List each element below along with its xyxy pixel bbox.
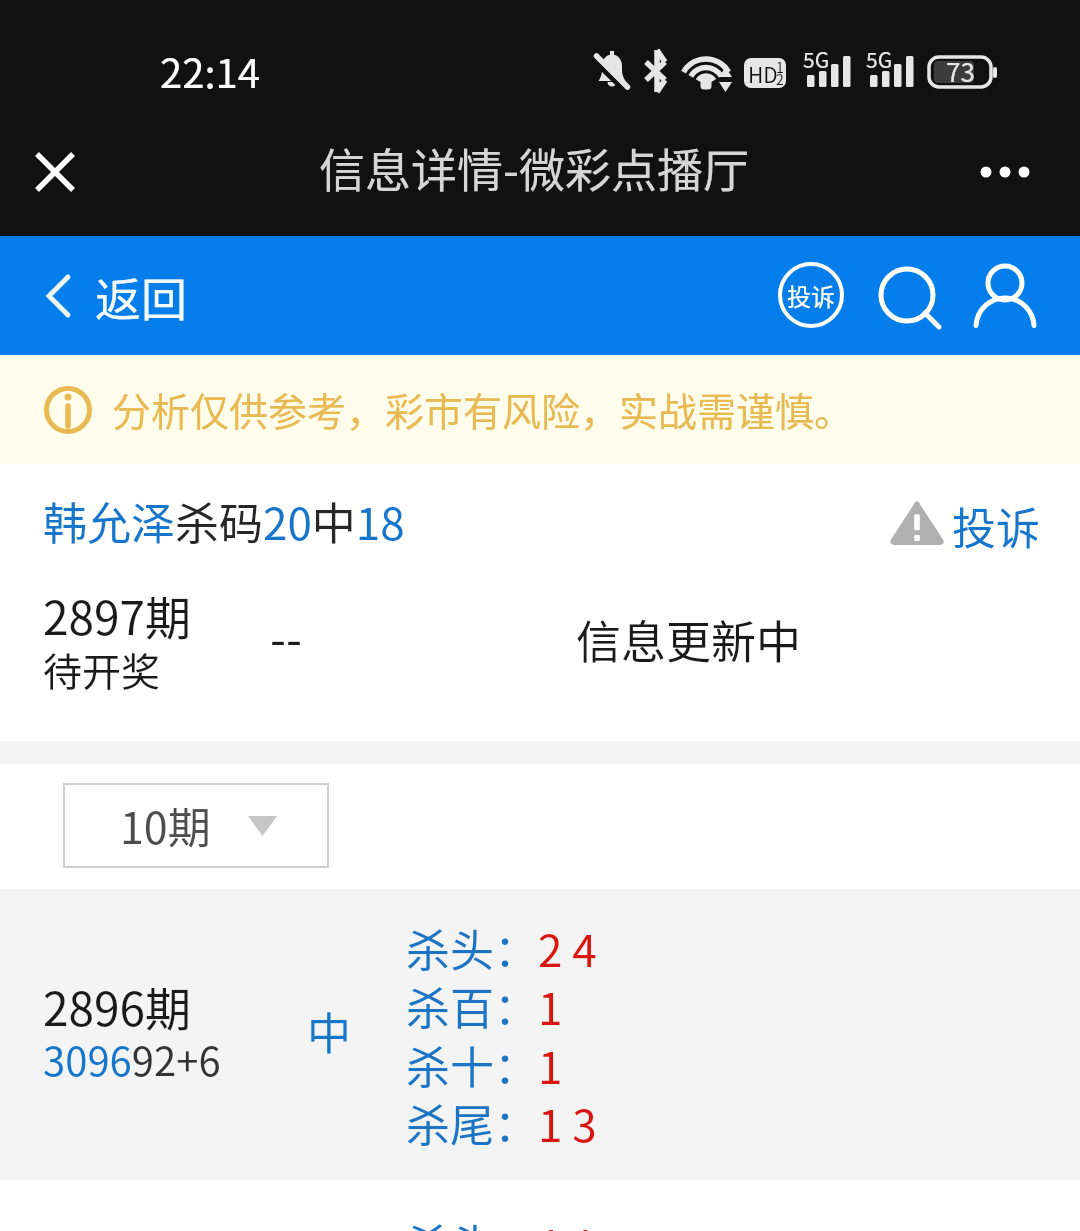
staticText: HD — [748, 59, 778, 89]
staticText: 杀头： — [406, 916, 538, 980]
button[interactable]: 10期 — [63, 783, 329, 868]
staticText: 杀百： — [406, 974, 538, 1038]
staticText: 5G — [866, 44, 893, 74]
staticText: -- — [270, 603, 302, 670]
staticText: 韩允泽杀码20中18 — [43, 489, 405, 553]
staticText: 投诉 — [952, 494, 1040, 550]
button[interactable]: 2897期 待开奖 — [0, 464, 1080, 741]
staticText: 2 4 — [538, 916, 597, 980]
staticText: 22:14 — [160, 42, 260, 100]
staticText: 309692+6 — [43, 1030, 221, 1088]
button[interactable]: 2896期 开奖详情 — [0, 889, 1080, 1180]
staticText: 投诉 — [787, 278, 835, 313]
staticText: 分析仅供参考，彩市有风险，实战需谨慎。 — [112, 381, 854, 437]
staticText: 10期 — [120, 794, 211, 856]
staticText: 待开奖 — [43, 641, 161, 697]
staticText: 1 3 — [538, 1091, 597, 1155]
button[interactable]: 返回 — [44, 262, 187, 330]
staticText: 1 — [538, 1033, 563, 1097]
staticText: 5G — [803, 44, 830, 74]
staticText: 1 — [538, 974, 563, 1038]
button[interactable]: Profile — [971, 262, 1039, 330]
staticText: 杀头： — [406, 1211, 538, 1231]
staticText: 2896期 — [43, 973, 192, 1040]
button[interactable]: More options — [966, 136, 1038, 208]
staticText: 2 — [776, 69, 784, 89]
staticText: 杀尾： — [406, 1091, 538, 1155]
staticText: 信息更新中 — [576, 607, 802, 672]
staticText: 返回 — [95, 263, 187, 330]
button[interactable]: 投诉 — [777, 261, 845, 329]
staticText: 1 — [776, 57, 784, 77]
button[interactable]: Close — [19, 136, 91, 208]
button[interactable]: 投诉 — [888, 494, 1040, 550]
staticText: 杀十： — [406, 1033, 538, 1097]
staticText: 信息详情-微彩点播厅 — [319, 134, 749, 201]
staticText: 中 — [307, 999, 351, 1063]
staticText: 2897期 — [43, 582, 192, 649]
button[interactable]: Search — [873, 264, 941, 332]
staticText: 73 — [946, 52, 975, 90]
staticText: 1 1 — [538, 1211, 597, 1231]
